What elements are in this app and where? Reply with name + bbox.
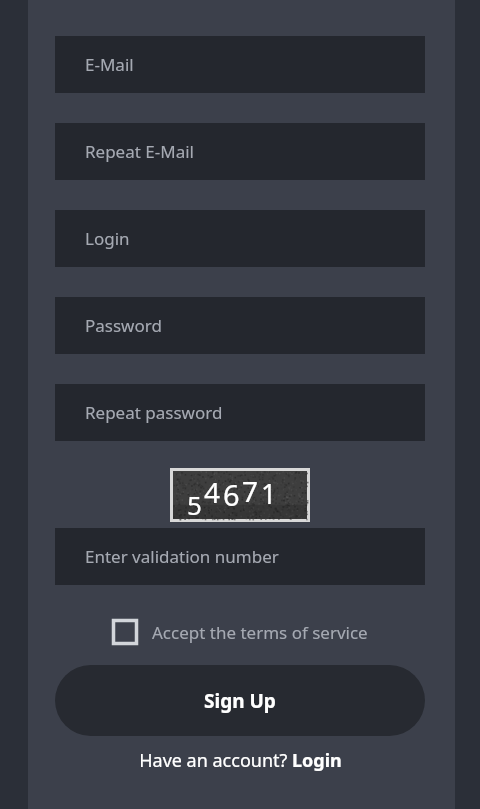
staticText: Repeat password (85, 401, 223, 424)
button[interactable]: E-Mail (55, 36, 425, 93)
button[interactable]: Repeat E-Mail (55, 123, 425, 180)
staticText: E-Mail (85, 53, 134, 76)
button[interactable]: Repeat password (55, 384, 425, 441)
button[interactable]: Enter validation number (55, 528, 425, 585)
button[interactable]: Have an account? Login (55, 748, 425, 773)
staticText: Sign Up (204, 688, 276, 714)
staticText: Repeat E-Mail (85, 140, 194, 163)
button[interactable]: Login (55, 210, 425, 267)
staticText: Password (85, 314, 162, 337)
button[interactable]: Sign Up (55, 665, 425, 736)
staticText: Enter validation number (85, 545, 279, 568)
staticText: 4 (204, 473, 221, 511)
staticText: 1 (261, 475, 277, 512)
button[interactable]: Password (55, 297, 425, 354)
staticText: Have an account? Login (139, 748, 342, 773)
staticText: 6 (223, 475, 240, 514)
staticText: 5 (187, 487, 202, 522)
staticText: Login (85, 227, 130, 250)
staticText: Accept the terms of service (152, 621, 368, 644)
button[interactable]: Accept the terms of service (55, 619, 425, 645)
staticText: 7 (242, 472, 259, 510)
